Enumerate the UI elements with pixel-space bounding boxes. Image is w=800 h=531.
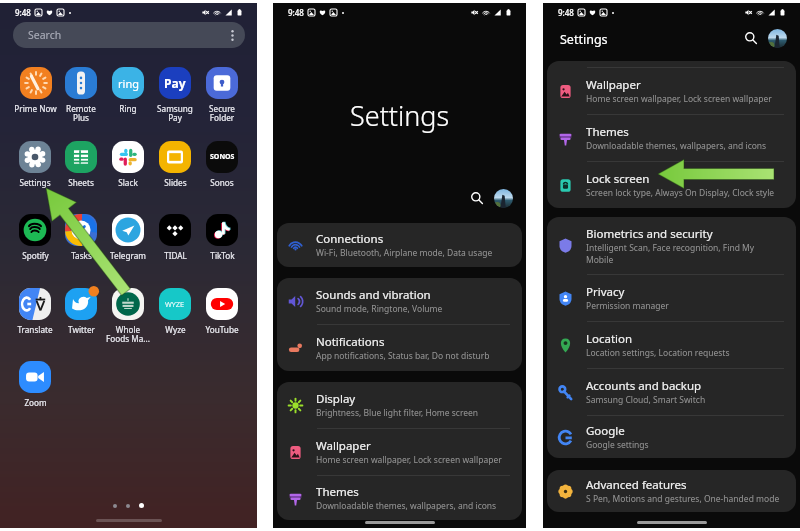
- staticText: Permission manager: [586, 300, 669, 312]
- staticText: TikTok: [210, 250, 235, 261]
- button[interactable]: Account: [768, 29, 787, 48]
- button[interactable]: Secure Folder: [198, 67, 245, 124]
- button[interactable]: Pay: [151, 67, 198, 124]
- staticText: Themes: [316, 484, 359, 500]
- button[interactable]: Google: [547, 416, 796, 458]
- button[interactable]: Zoom: [12, 361, 58, 408]
- staticText: Settings: [560, 31, 608, 48]
- button[interactable]: Location: [547, 322, 796, 368]
- button[interactable]: TIDAL: [151, 214, 198, 261]
- staticText: Sonos: [210, 177, 234, 188]
- button[interactable]: Remote Plus: [58, 67, 104, 124]
- staticText: Wi-Fi, Bluetooth, Airplane mode, Data us…: [316, 247, 493, 259]
- staticText: Ring: [119, 103, 137, 114]
- staticText: Accounts and backup: [586, 378, 702, 394]
- staticText: Samsung Cloud, Smart Switch: [586, 394, 706, 406]
- staticText: Zoom: [24, 397, 47, 408]
- staticText: Tasks: [71, 250, 92, 261]
- button[interactable]: Lock screen: [547, 162, 796, 208]
- staticText: Wallpaper: [586, 77, 641, 93]
- staticText: App notifications, Status bar, Do not di…: [316, 350, 490, 362]
- staticText: Google settings: [586, 439, 649, 451]
- button[interactable]: Translate: [12, 288, 58, 335]
- button[interactable]: Slack: [104, 141, 151, 188]
- button[interactable]: TikTok: [198, 214, 245, 261]
- button[interactable]: Prime Now: [12, 67, 58, 114]
- button[interactable]: Slides: [151, 141, 198, 188]
- button[interactable]: Accounts and backup: [547, 369, 796, 415]
- button[interactable]: WYZE: [151, 288, 198, 335]
- button[interactable]: Account: [494, 189, 513, 208]
- staticText: Brightness, Blue light filter, Home scre…: [316, 407, 479, 419]
- button[interactable]: Sheets: [58, 141, 104, 188]
- button[interactable]: Settings: [12, 141, 58, 188]
- staticText: WYZE: [165, 299, 185, 309]
- button[interactable]: Sounds and vibration: [277, 278, 522, 324]
- button[interactable]: Spotify: [12, 214, 58, 261]
- staticText: Location settings, Location requests: [586, 347, 730, 359]
- button[interactable]: Wallpaper: [277, 429, 522, 475]
- staticText: Whole Foods Ma...: [106, 324, 150, 345]
- button[interactable]: Advanced features: [547, 470, 796, 512]
- button[interactable]: Twitter: [58, 288, 104, 335]
- staticText: Wyze: [165, 324, 186, 335]
- staticText: Spotify: [22, 250, 49, 261]
- staticText: 9:48: [288, 7, 304, 18]
- button[interactable]: Privacy: [547, 275, 796, 321]
- button[interactable]: Biometrics and security: [547, 217, 796, 274]
- staticText: Downloadable themes, wallpapers, and ico…: [586, 140, 767, 152]
- staticText: Wallpaper: [316, 438, 371, 454]
- button[interactable]: Search: [467, 188, 487, 208]
- button[interactable]: Display: [277, 382, 522, 428]
- staticText: Secure Folder: [209, 103, 235, 124]
- button[interactable]: Telegram: [104, 214, 151, 261]
- staticText: 9:48: [15, 7, 31, 18]
- staticText: Slides: [164, 177, 187, 188]
- staticText: ring: [118, 76, 139, 91]
- button[interactable]: Themes: [547, 115, 796, 161]
- staticText: Advanced features: [586, 477, 687, 493]
- staticText: Downloadable themes, wallpapers, and ico…: [316, 500, 497, 512]
- staticText: Prime Now: [14, 103, 57, 114]
- staticText: Intelligent Scan, Face recognition, Find…: [586, 242, 755, 266]
- button[interactable]: ring: [104, 67, 151, 114]
- staticText: Settings: [19, 177, 51, 188]
- staticText: Samsung Pay: [157, 103, 193, 124]
- staticText: Translate: [17, 324, 53, 335]
- staticText: Privacy: [586, 284, 625, 300]
- staticText: S Pen, Motions and gestures, One-handed …: [586, 493, 780, 505]
- button[interactable]: Wallpaper: [547, 68, 796, 114]
- staticText: Search: [28, 28, 62, 42]
- staticText: Twitter: [68, 324, 95, 335]
- staticText: Home screen wallpaper, Lock screen wallp…: [586, 93, 772, 105]
- staticText: Google: [586, 423, 625, 439]
- staticText: Slack: [118, 177, 138, 188]
- button[interactable]: Notifications: [277, 325, 522, 371]
- button[interactable]: SONOS: [198, 141, 245, 188]
- staticText: Settings: [350, 97, 450, 134]
- staticText: Sounds and vibration: [316, 287, 431, 303]
- staticText: Themes: [586, 124, 629, 140]
- button[interactable]: Connections: [277, 223, 522, 267]
- button[interactable]: Whole Foods Ma...: [104, 288, 151, 345]
- staticText: TIDAL: [164, 250, 187, 261]
- staticText: Connections: [316, 231, 384, 247]
- staticText: Screen lock type, Always On Display, Clo…: [586, 187, 775, 199]
- staticText: Home screen wallpaper, Lock screen wallp…: [316, 454, 502, 466]
- staticText: Biometrics and security: [586, 226, 713, 242]
- staticText: YouTube: [205, 324, 239, 335]
- staticText: Sound mode, Ringtone, Volume: [316, 303, 443, 315]
- staticText: Notifications: [316, 334, 385, 350]
- staticText: Location: [586, 331, 633, 347]
- staticText: SONOS: [210, 152, 235, 162]
- button[interactable]: Search: [13, 22, 245, 48]
- staticText: Lock screen: [586, 171, 650, 187]
- button[interactable]: Tasks: [58, 214, 104, 261]
- button[interactable]: Search: [741, 28, 761, 48]
- staticText: Remote Plus: [66, 103, 96, 124]
- staticText: Display: [316, 391, 356, 407]
- staticText: Pay: [164, 75, 186, 91]
- button[interactable]: YouTube: [198, 288, 245, 335]
- button[interactable]: Themes: [277, 476, 522, 520]
- staticText: Telegram: [110, 250, 146, 261]
